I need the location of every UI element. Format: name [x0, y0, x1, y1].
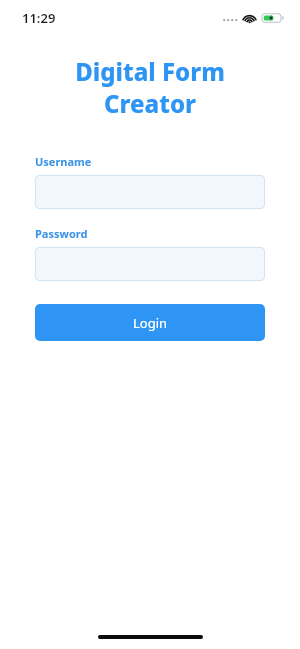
staticText: Digital Form Creator	[20, 55, 280, 120]
button[interactable]: Login	[35, 304, 265, 341]
button[interactable]: Username input	[35, 175, 265, 209]
button[interactable]: Password input	[35, 247, 265, 281]
staticText: Password	[35, 226, 88, 241]
staticText: 11:29	[22, 9, 56, 27]
staticText: Login	[133, 314, 168, 332]
staticText: Username	[35, 154, 92, 169]
